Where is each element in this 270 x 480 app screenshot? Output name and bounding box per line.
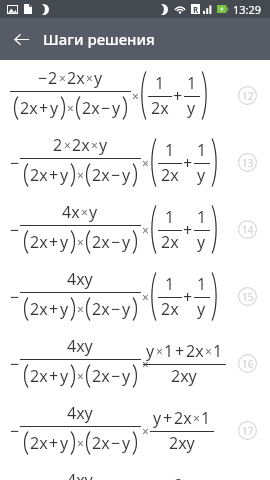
staticText: 2x <box>161 298 179 320</box>
staticText: y <box>197 164 206 186</box>
staticText: 2x <box>30 298 48 320</box>
staticText: − <box>10 420 20 442</box>
staticText: × <box>77 368 84 384</box>
staticText: 16 <box>242 357 254 371</box>
staticText: 2x <box>92 231 110 253</box>
staticText: 2x <box>30 231 48 253</box>
staticText: 1 <box>201 407 211 429</box>
staticText: × <box>142 155 149 171</box>
staticText: 1 <box>187 72 197 94</box>
staticText: y <box>99 134 108 156</box>
staticText: 4xy <box>67 335 93 357</box>
staticText: + <box>173 85 183 107</box>
staticText: 17 <box>242 424 254 438</box>
button[interactable]: − <box>0 395 270 462</box>
staticText: y <box>153 407 162 429</box>
staticText: y <box>60 231 69 253</box>
staticText: 4xy <box>67 268 93 290</box>
staticText: + <box>183 219 193 241</box>
button[interactable]: − <box>0 127 270 194</box>
staticText: 2x <box>186 340 204 362</box>
staticText: × <box>77 167 84 183</box>
staticText: − <box>111 164 121 186</box>
staticText: 2x <box>30 164 48 186</box>
staticText: 2x <box>67 67 85 89</box>
staticText: 1 <box>165 139 175 161</box>
staticText: + <box>163 407 173 429</box>
staticText: y <box>197 298 206 320</box>
staticText: y <box>50 97 59 119</box>
staticText: + <box>175 340 185 362</box>
staticText: − <box>111 231 121 253</box>
staticText: 1 <box>165 273 175 295</box>
staticText: × <box>86 70 93 86</box>
staticText: × <box>156 343 163 359</box>
button[interactable]: − <box>0 261 270 328</box>
staticText: + <box>39 97 49 119</box>
staticText: 1 <box>197 139 207 161</box>
staticText: 2x <box>161 231 179 253</box>
staticText: 2xy <box>171 365 197 387</box>
staticText: 13 <box>242 156 254 170</box>
staticText: 2x <box>161 164 179 186</box>
staticText: R <box>193 4 199 14</box>
staticText: y <box>112 97 121 119</box>
staticText: 2x <box>72 134 90 156</box>
staticText: − <box>10 219 20 241</box>
staticText: 4x <box>62 201 80 223</box>
staticText: 2xy <box>169 432 195 454</box>
staticText: − <box>38 67 48 89</box>
staticText: y <box>122 365 131 387</box>
staticText: y <box>122 432 131 454</box>
staticText: 2 <box>53 134 63 156</box>
staticText: × <box>142 289 149 305</box>
button[interactable]: Back <box>0 18 42 60</box>
staticText: y <box>89 201 98 223</box>
staticText: 1 <box>197 273 207 295</box>
staticText: 2x <box>30 432 48 454</box>
staticText: × <box>91 137 98 153</box>
staticText: Шаги решения <box>43 29 155 49</box>
staticText: 2x <box>174 474 192 480</box>
button[interactable]: − <box>0 60 270 127</box>
staticText: 12 <box>242 89 254 103</box>
staticText: × <box>67 100 74 116</box>
staticText: y <box>187 97 196 119</box>
staticText: − <box>111 432 121 454</box>
staticText: 15 <box>242 290 254 304</box>
staticText: × <box>142 356 149 372</box>
button[interactable]: − <box>0 194 270 261</box>
staticText: 2x <box>92 164 110 186</box>
staticText: 2 <box>48 67 58 89</box>
staticText: − <box>10 152 20 174</box>
staticText: − <box>101 97 111 119</box>
staticText: 2x <box>92 432 110 454</box>
staticText: × <box>193 410 200 426</box>
staticText: 2x <box>92 365 110 387</box>
staticText: − <box>111 365 121 387</box>
staticText: 13:29 <box>233 2 262 17</box>
staticText: × <box>81 204 88 220</box>
staticText: − <box>111 298 121 320</box>
staticText: 1 <box>164 340 174 362</box>
staticText: y <box>122 231 131 253</box>
staticText: 14 <box>242 223 254 237</box>
staticText: × <box>59 70 66 86</box>
staticText: × <box>64 137 71 153</box>
staticText: 2x <box>30 365 48 387</box>
staticText: 1 <box>155 72 165 94</box>
button[interactable]: − <box>0 462 270 480</box>
button[interactable]: − <box>0 328 270 395</box>
staticText: + <box>183 152 193 174</box>
staticText: 1 <box>165 206 175 228</box>
staticText: × <box>77 234 84 250</box>
staticText: 2x <box>174 407 192 429</box>
staticText: y <box>60 365 69 387</box>
staticText: y <box>94 67 103 89</box>
staticText: 1 <box>197 206 207 228</box>
staticText: 2x <box>82 97 100 119</box>
staticText: + <box>49 231 59 253</box>
staticText: 1 <box>213 340 223 362</box>
staticText: × <box>77 435 84 451</box>
